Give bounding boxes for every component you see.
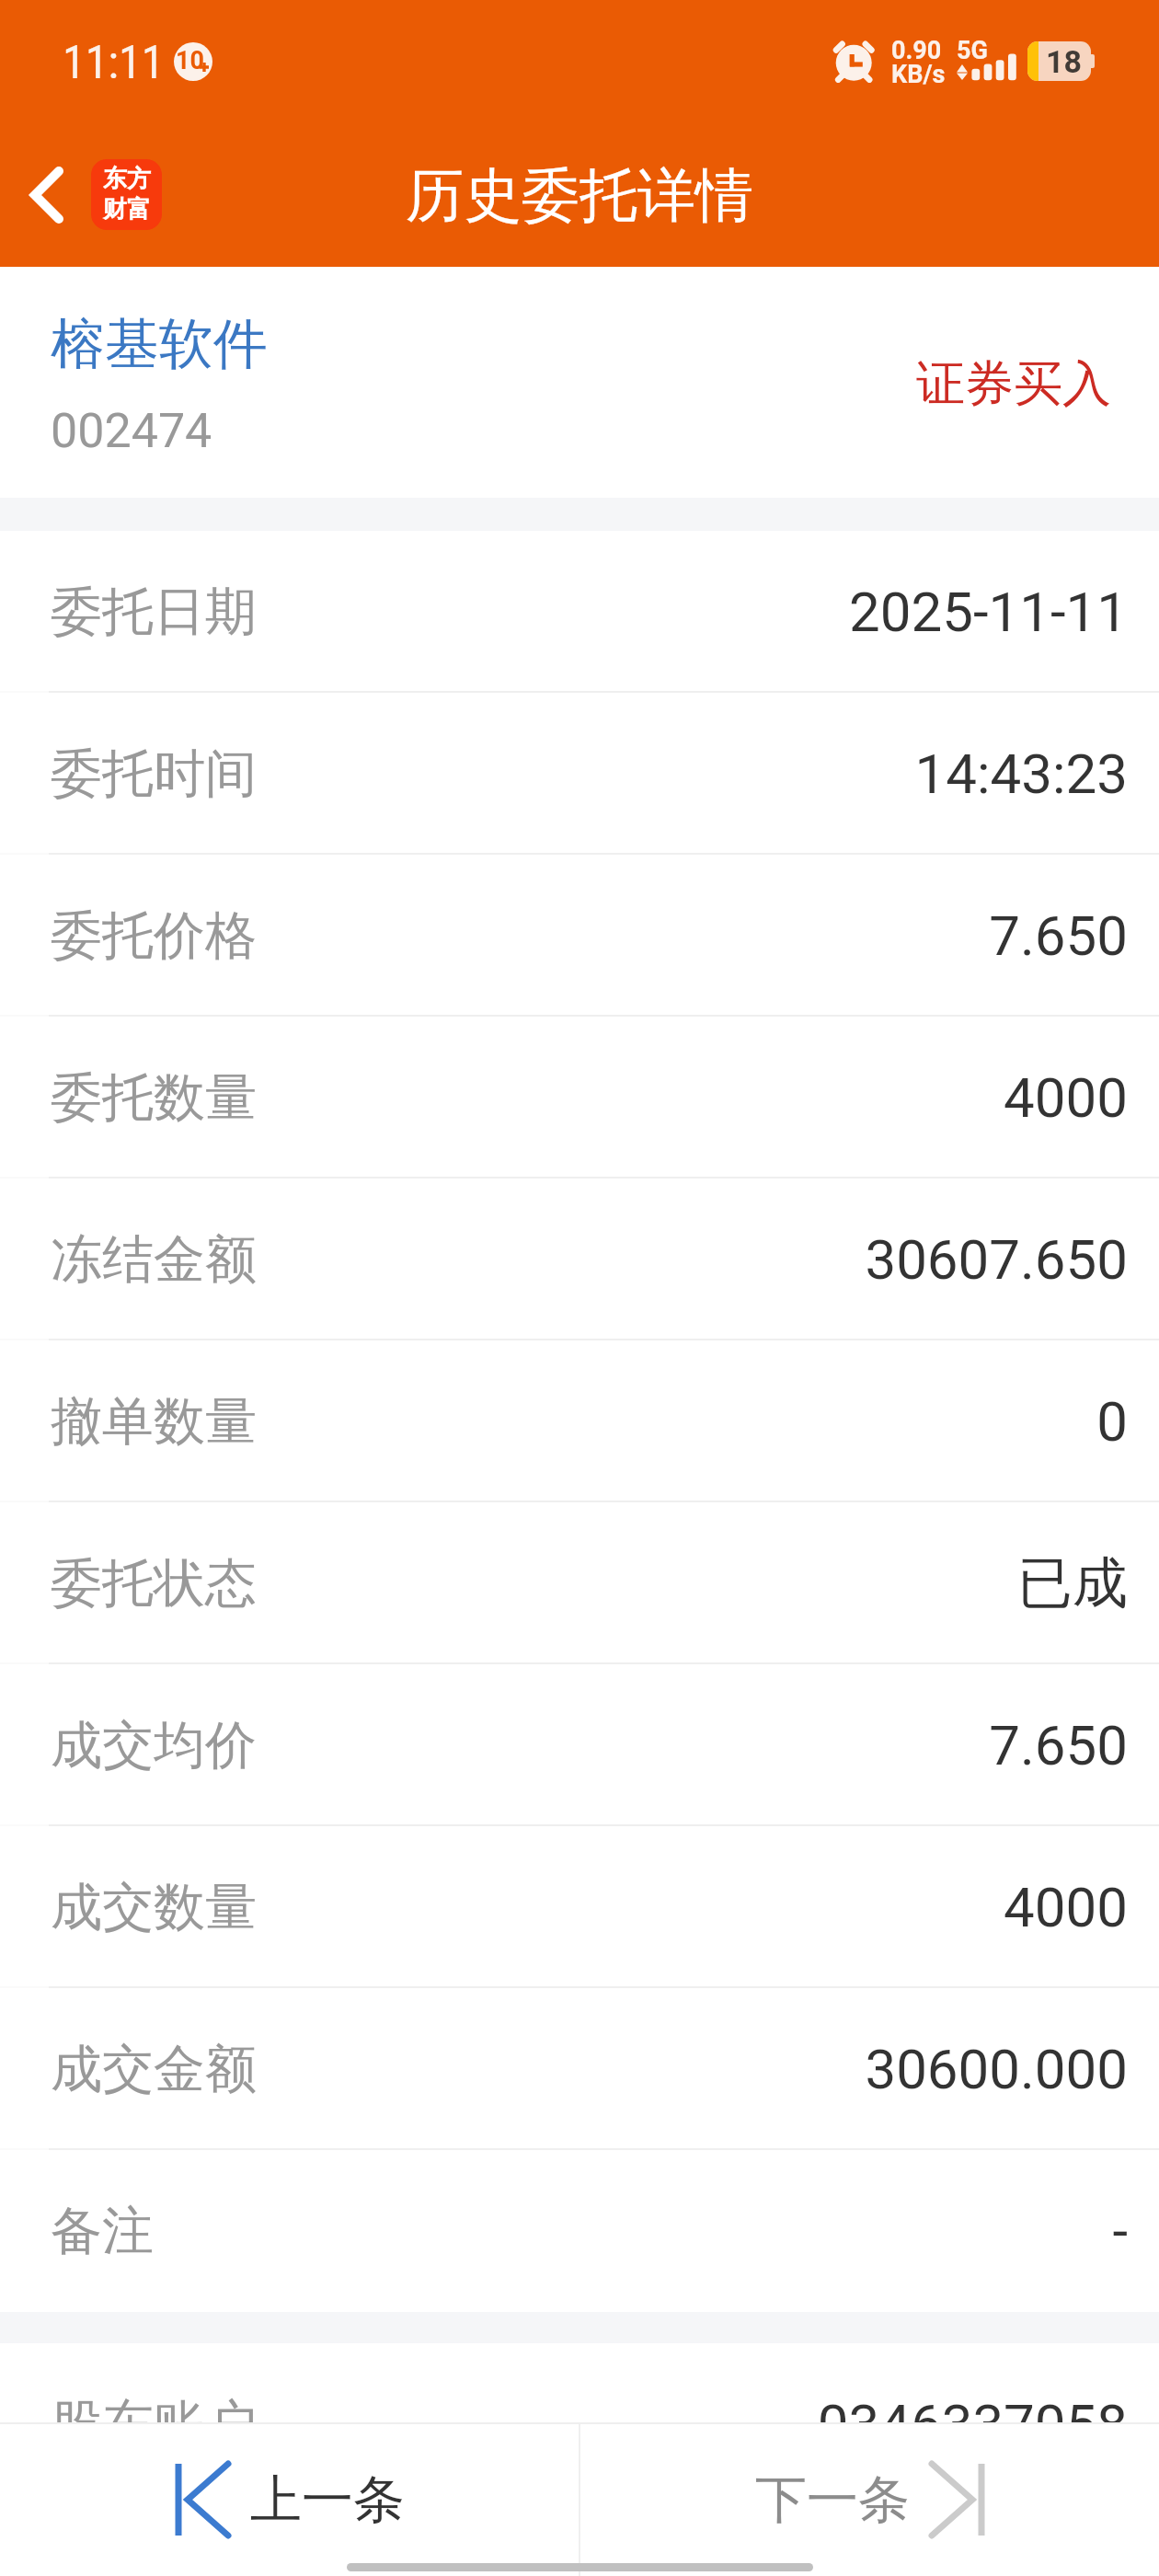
button[interactable]: 撤单数量: [0, 1340, 1159, 1502]
staticText: 财富: [103, 194, 151, 224]
staticText: 委托时间: [51, 742, 257, 807]
staticText: KB/s: [891, 60, 946, 89]
staticText: 11:11: [63, 36, 165, 90]
staticText: -: [154, 2199, 1128, 2263]
button[interactable]: 成交均价: [0, 1664, 1159, 1826]
staticText: 证券买入: [916, 353, 1111, 415]
staticText: 上一条: [250, 2467, 405, 2533]
staticText: 撤单数量: [51, 1389, 257, 1455]
staticText: 0.90: [891, 36, 942, 65]
staticText: 14:43:23: [257, 742, 1128, 806]
staticText: 历史委托详情: [406, 159, 753, 232]
button[interactable]: 委托数量: [0, 1017, 1159, 1179]
staticText: 委托状态: [51, 1551, 257, 1616]
staticText: 4000: [257, 1875, 1128, 1939]
staticText: 4000: [257, 1065, 1128, 1130]
staticText: 30607.650: [257, 1227, 1128, 1292]
staticText: 18: [1046, 43, 1083, 80]
button[interactable]: 冻结金额: [0, 1179, 1159, 1340]
staticText: 7.650: [257, 903, 1128, 968]
staticText: 东方: [103, 164, 151, 194]
staticText: 已成: [257, 1548, 1128, 1618]
button[interactable]: 上一条: [0, 2422, 579, 2576]
staticText: 成交金额: [51, 2037, 257, 2102]
staticText: 成交数量: [51, 1875, 257, 1940]
button[interactable]: 榕基软件: [0, 267, 1159, 498]
staticText: 002474: [51, 403, 212, 459]
staticText: 下一条: [755, 2467, 910, 2533]
staticText: 成交均价: [51, 1713, 257, 1778]
button[interactable]: 委托状态: [0, 1502, 1159, 1664]
staticText: 10: [176, 46, 204, 75]
button[interactable]: 委托价格: [0, 855, 1159, 1017]
button[interactable]: 委托日期: [0, 531, 1159, 693]
staticText: 30600.000: [257, 2037, 1128, 2101]
button[interactable]: 成交数量: [0, 1826, 1159, 1988]
staticText: 5G: [957, 36, 988, 65]
button[interactable]: 成交金额: [0, 1988, 1159, 2150]
staticText: 股东账户: [51, 2392, 257, 2457]
staticText: 2025-11-11: [257, 580, 1128, 644]
button[interactable]: 备注: [0, 2150, 1159, 2312]
staticText: 委托价格: [51, 903, 257, 969]
staticText: 7.650: [257, 1713, 1128, 1777]
button[interactable]: 股东账户: [0, 2343, 1159, 2505]
staticText: 备注: [51, 2199, 154, 2264]
button[interactable]: 委托时间: [0, 693, 1159, 855]
staticText: 榕基软件: [51, 310, 268, 378]
button[interactable]: Back: [0, 146, 173, 243]
button[interactable]: 下一条: [580, 2422, 1159, 2576]
staticText: 0: [257, 1389, 1128, 1454]
staticText: 冻结金额: [51, 1227, 257, 1293]
staticText: 0346337058: [257, 2392, 1128, 2456]
staticText: 委托数量: [51, 1065, 257, 1131]
staticText: 委托日期: [51, 580, 257, 645]
